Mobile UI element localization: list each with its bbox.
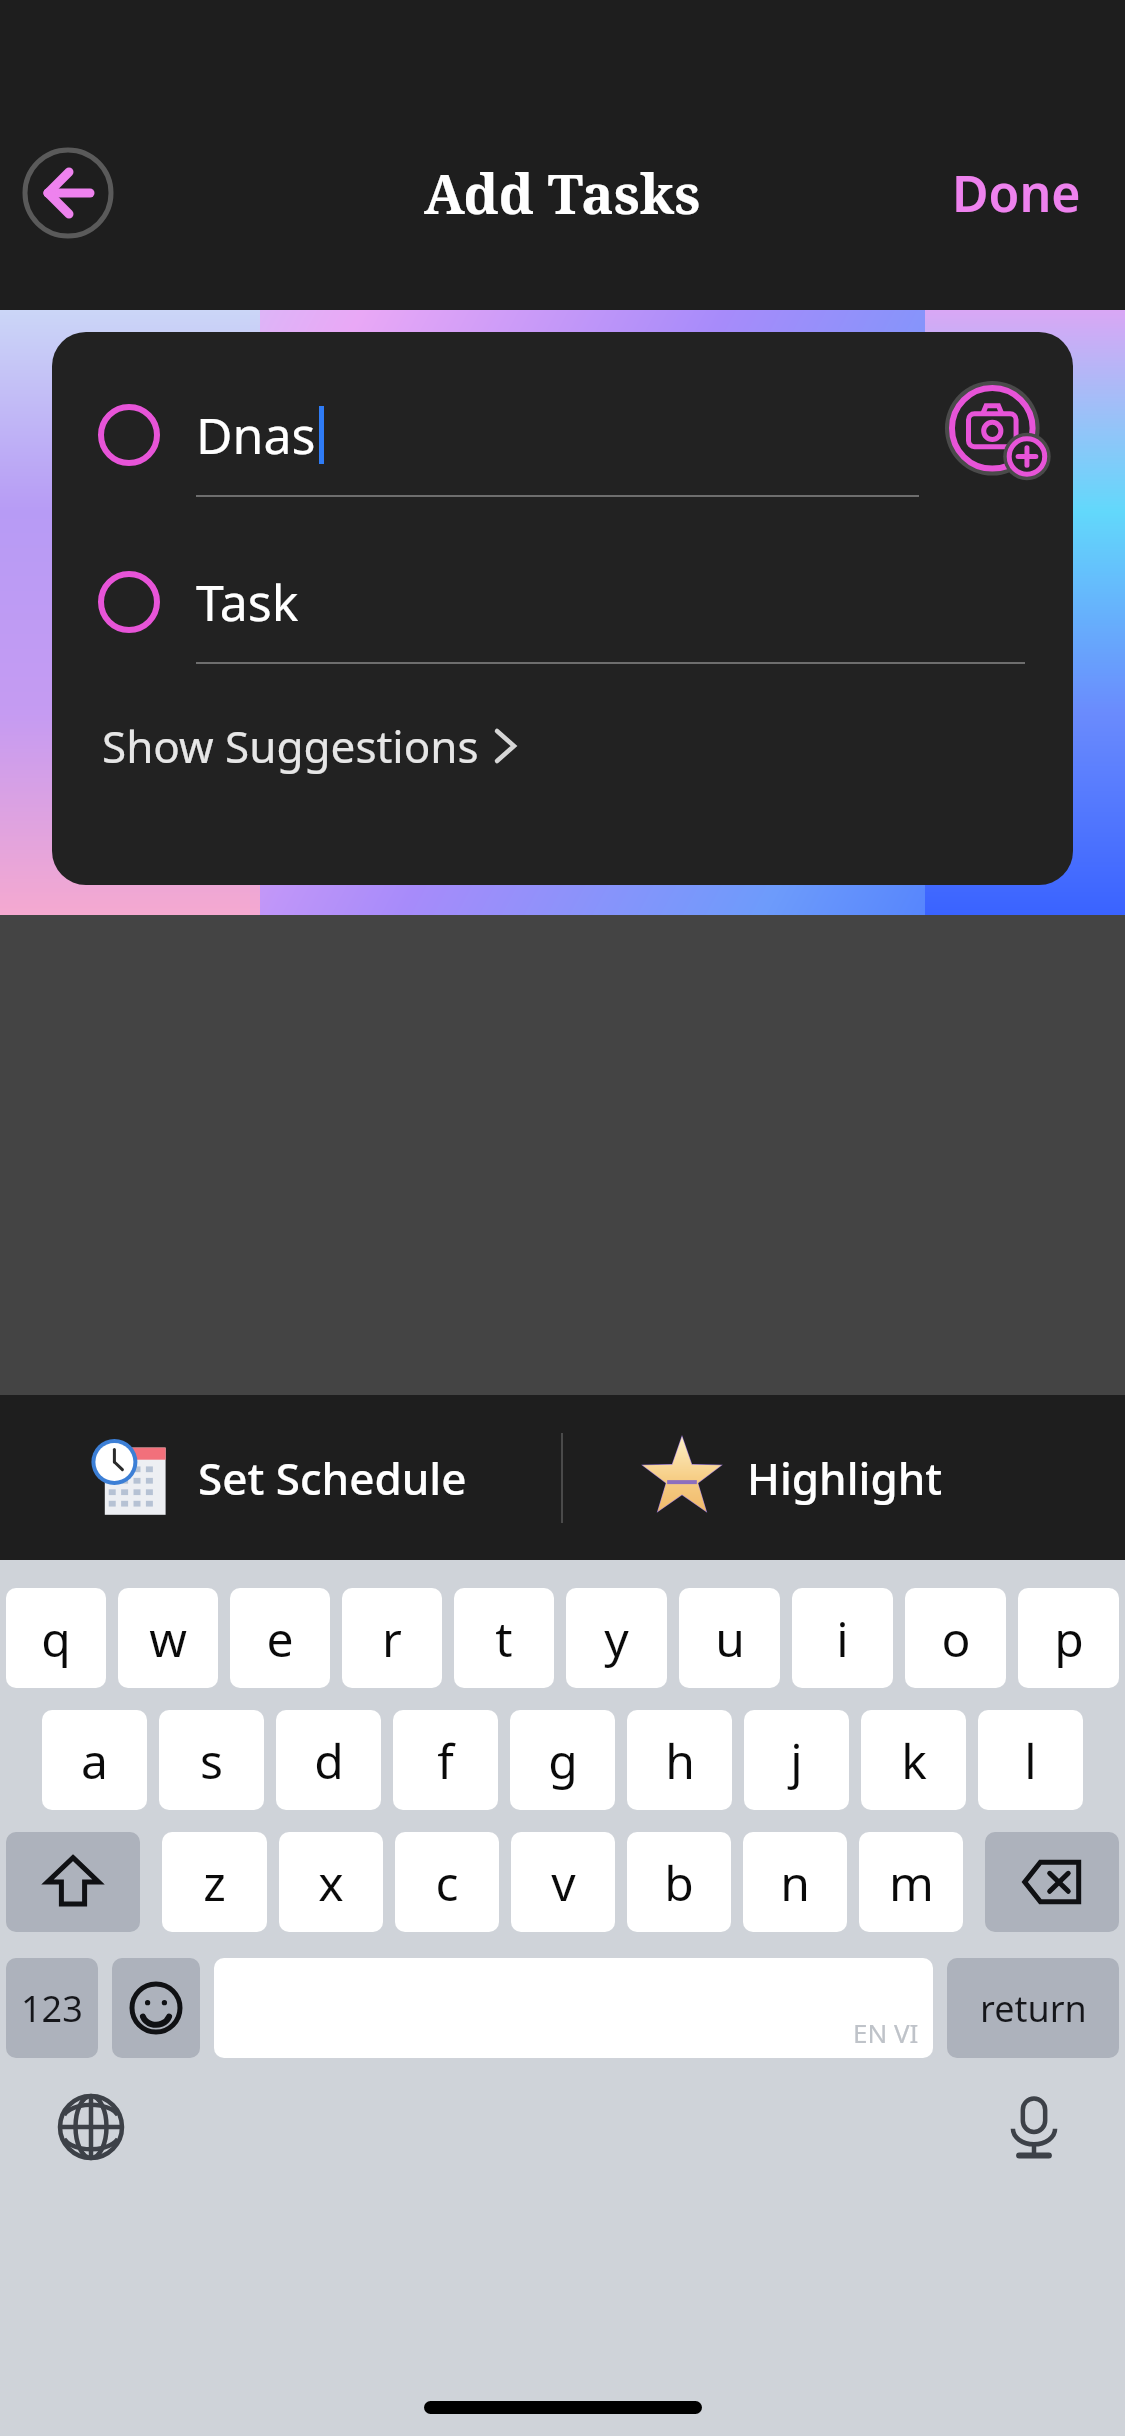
staticText: c (435, 1850, 459, 1915)
button[interactable]: l (978, 1710, 1083, 1810)
staticText: v (551, 1850, 576, 1915)
button[interactable]: Back (22, 147, 114, 239)
staticText: b (664, 1850, 694, 1915)
button[interactable]: h (627, 1710, 732, 1810)
staticText: t (495, 1606, 513, 1671)
button[interactable]: Backspace (985, 1832, 1119, 1932)
button[interactable]: z (162, 1832, 267, 1932)
staticText: w (149, 1606, 187, 1671)
staticText: Set Schedule (198, 1448, 467, 1508)
staticText: f (437, 1728, 454, 1793)
staticText: Add Tasks (424, 156, 701, 230)
staticText: return (980, 1984, 1087, 2033)
button[interactable]: Dnas (52, 372, 1073, 497)
staticText: g (548, 1728, 578, 1793)
button[interactable]: a (42, 1710, 147, 1810)
staticText: Done (952, 159, 1081, 227)
staticText: h (665, 1728, 695, 1793)
staticText: s (200, 1728, 223, 1793)
staticText: 123 (21, 1984, 83, 2033)
button[interactable]: j (744, 1710, 849, 1810)
button[interactable]: c (395, 1832, 499, 1932)
staticText: d (314, 1728, 344, 1793)
button[interactable]: n (743, 1832, 847, 1932)
button[interactable]: p (1018, 1588, 1119, 1688)
button[interactable]: Highlight (563, 1395, 1125, 1560)
staticText: Show Suggestions (102, 716, 479, 776)
button[interactable]: o (905, 1588, 1006, 1688)
staticText: k (901, 1728, 927, 1793)
staticText: e (266, 1606, 294, 1671)
staticText: u (715, 1606, 745, 1671)
button[interactable]: s (159, 1710, 264, 1810)
button[interactable]: q (6, 1588, 106, 1688)
staticText: Dnas (196, 401, 316, 469)
button[interactable]: v (511, 1832, 615, 1932)
button[interactable]: Dictation (991, 2084, 1077, 2170)
button[interactable]: Show Suggestions (98, 708, 521, 784)
button[interactable]: Space (214, 1958, 933, 2058)
button[interactable]: m (859, 1832, 963, 1932)
staticText: q (41, 1606, 71, 1671)
button[interactable]: k (861, 1710, 966, 1810)
staticText: EN VI (853, 2015, 919, 2050)
staticText: y (604, 1606, 629, 1671)
button[interactable]: f (393, 1710, 498, 1810)
button[interactable]: i (792, 1588, 893, 1688)
button[interactable]: Task (52, 539, 1073, 664)
button[interactable]: Shift (6, 1832, 140, 1932)
button[interactable]: y (566, 1588, 667, 1688)
button[interactable]: Set Schedule (0, 1395, 561, 1560)
staticText: p (1054, 1606, 1084, 1671)
button[interactable]: Add photo (943, 379, 1055, 491)
button[interactable]: x (279, 1832, 383, 1932)
button[interactable]: g (510, 1710, 615, 1810)
button[interactable]: e (230, 1588, 330, 1688)
staticText: o (941, 1606, 971, 1671)
button[interactable]: 123 (6, 1958, 98, 2058)
button[interactable]: Change keyboard (48, 2084, 134, 2170)
button[interactable]: Done (944, 149, 1089, 237)
staticText: r (382, 1606, 402, 1671)
staticText: x (318, 1850, 344, 1915)
button[interactable]: t (454, 1588, 554, 1688)
button[interactable]: Emoji (112, 1958, 200, 2058)
staticText: a (81, 1728, 108, 1793)
staticText: l (1024, 1728, 1037, 1793)
button[interactable]: d (276, 1710, 381, 1810)
staticText: j (790, 1728, 803, 1793)
staticText: i (836, 1606, 849, 1671)
staticText: Task (196, 568, 299, 636)
staticText: m (889, 1850, 934, 1915)
button[interactable]: r (342, 1588, 442, 1688)
button[interactable]: w (118, 1588, 218, 1688)
staticText: n (780, 1850, 810, 1915)
button[interactable]: u (679, 1588, 780, 1688)
staticText: z (203, 1850, 226, 1915)
button[interactable]: b (627, 1832, 731, 1932)
button[interactable]: return (947, 1958, 1119, 2058)
staticText: Highlight (747, 1448, 943, 1508)
